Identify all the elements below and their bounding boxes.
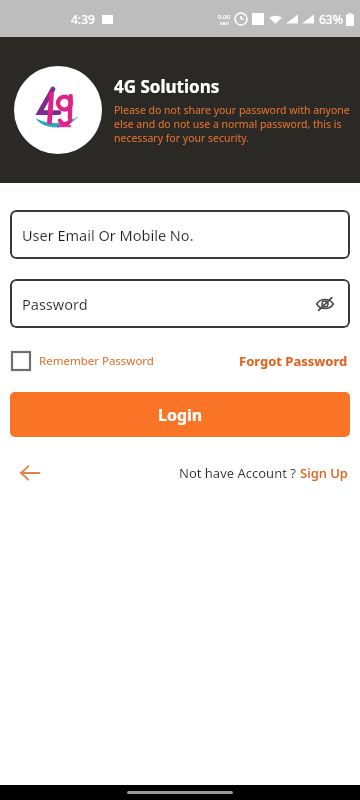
staticText: Sign Up bbox=[300, 464, 348, 482]
staticText: 4G Solutions bbox=[114, 75, 220, 98]
staticText: 0.00 bbox=[218, 13, 230, 21]
staticText: User Email Or Mobile No. bbox=[22, 225, 194, 245]
staticText: Login bbox=[158, 404, 203, 426]
staticText: Not have Account ? bbox=[179, 464, 300, 482]
button[interactable]: Back bbox=[12, 455, 48, 491]
staticText: Please do not share your password with a… bbox=[114, 103, 350, 145]
button[interactable]: Remember Password bbox=[12, 352, 154, 370]
button[interactable]: Show password bbox=[312, 291, 338, 317]
staticText: Remember Password bbox=[39, 353, 154, 369]
staticText: KB/S bbox=[220, 21, 229, 26]
button[interactable]: Forgot Password bbox=[239, 352, 348, 370]
button[interactable]: Not have Account ? bbox=[179, 464, 348, 482]
button[interactable]: User Email Or Mobile No. bbox=[10, 210, 350, 259]
staticText: Password bbox=[22, 294, 88, 314]
staticText: 63% bbox=[319, 11, 343, 27]
button[interactable]: Password bbox=[10, 279, 350, 328]
button[interactable]: Login bbox=[10, 392, 350, 437]
staticText: 4:39 bbox=[71, 11, 95, 27]
